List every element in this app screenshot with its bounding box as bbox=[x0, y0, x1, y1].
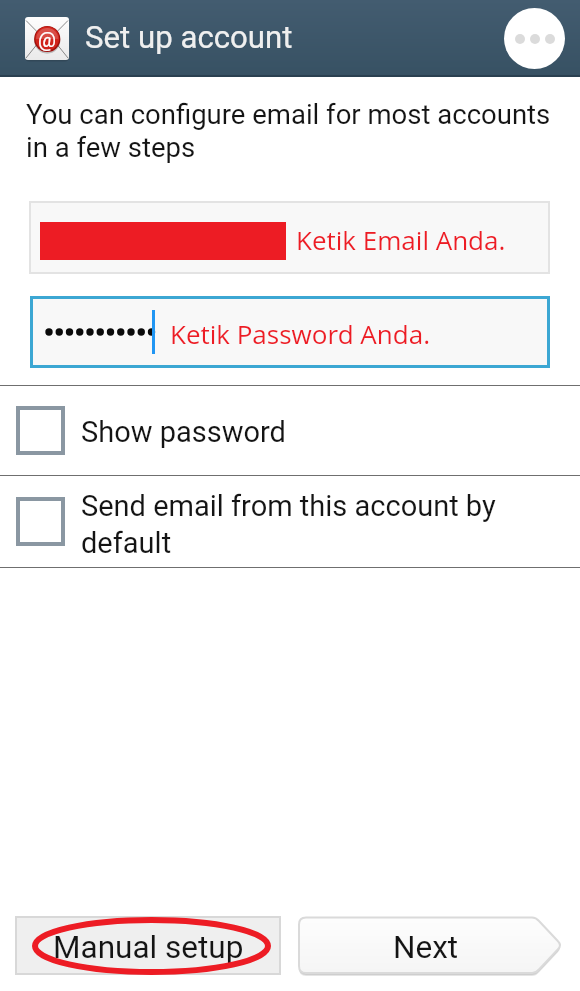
button[interactable]: Ketik Password Anda. bbox=[33, 299, 547, 365]
staticText: Show password bbox=[81, 415, 513, 449]
staticText: Next bbox=[393, 929, 459, 966]
button[interactable]: Ketik Email Anda. bbox=[30, 202, 549, 273]
staticText: Manual setup bbox=[53, 929, 244, 966]
staticText: Send email from this account by default bbox=[81, 489, 513, 560]
staticText: @ bbox=[38, 28, 56, 51]
button[interactable]: Next bbox=[294, 913, 566, 979]
button[interactable]: Show password bbox=[0, 386, 580, 475]
staticText: You can configure email for most account… bbox=[26, 98, 554, 163]
staticText: Ketik Password Anda. bbox=[170, 316, 431, 351]
staticText: Set up account bbox=[85, 19, 293, 56]
button[interactable]: Send email from this account by default bbox=[0, 476, 580, 567]
staticText: Ketik Email Anda. bbox=[296, 222, 506, 257]
button[interactable]: More options bbox=[504, 8, 565, 69]
button[interactable]: Manual setup bbox=[16, 917, 280, 974]
